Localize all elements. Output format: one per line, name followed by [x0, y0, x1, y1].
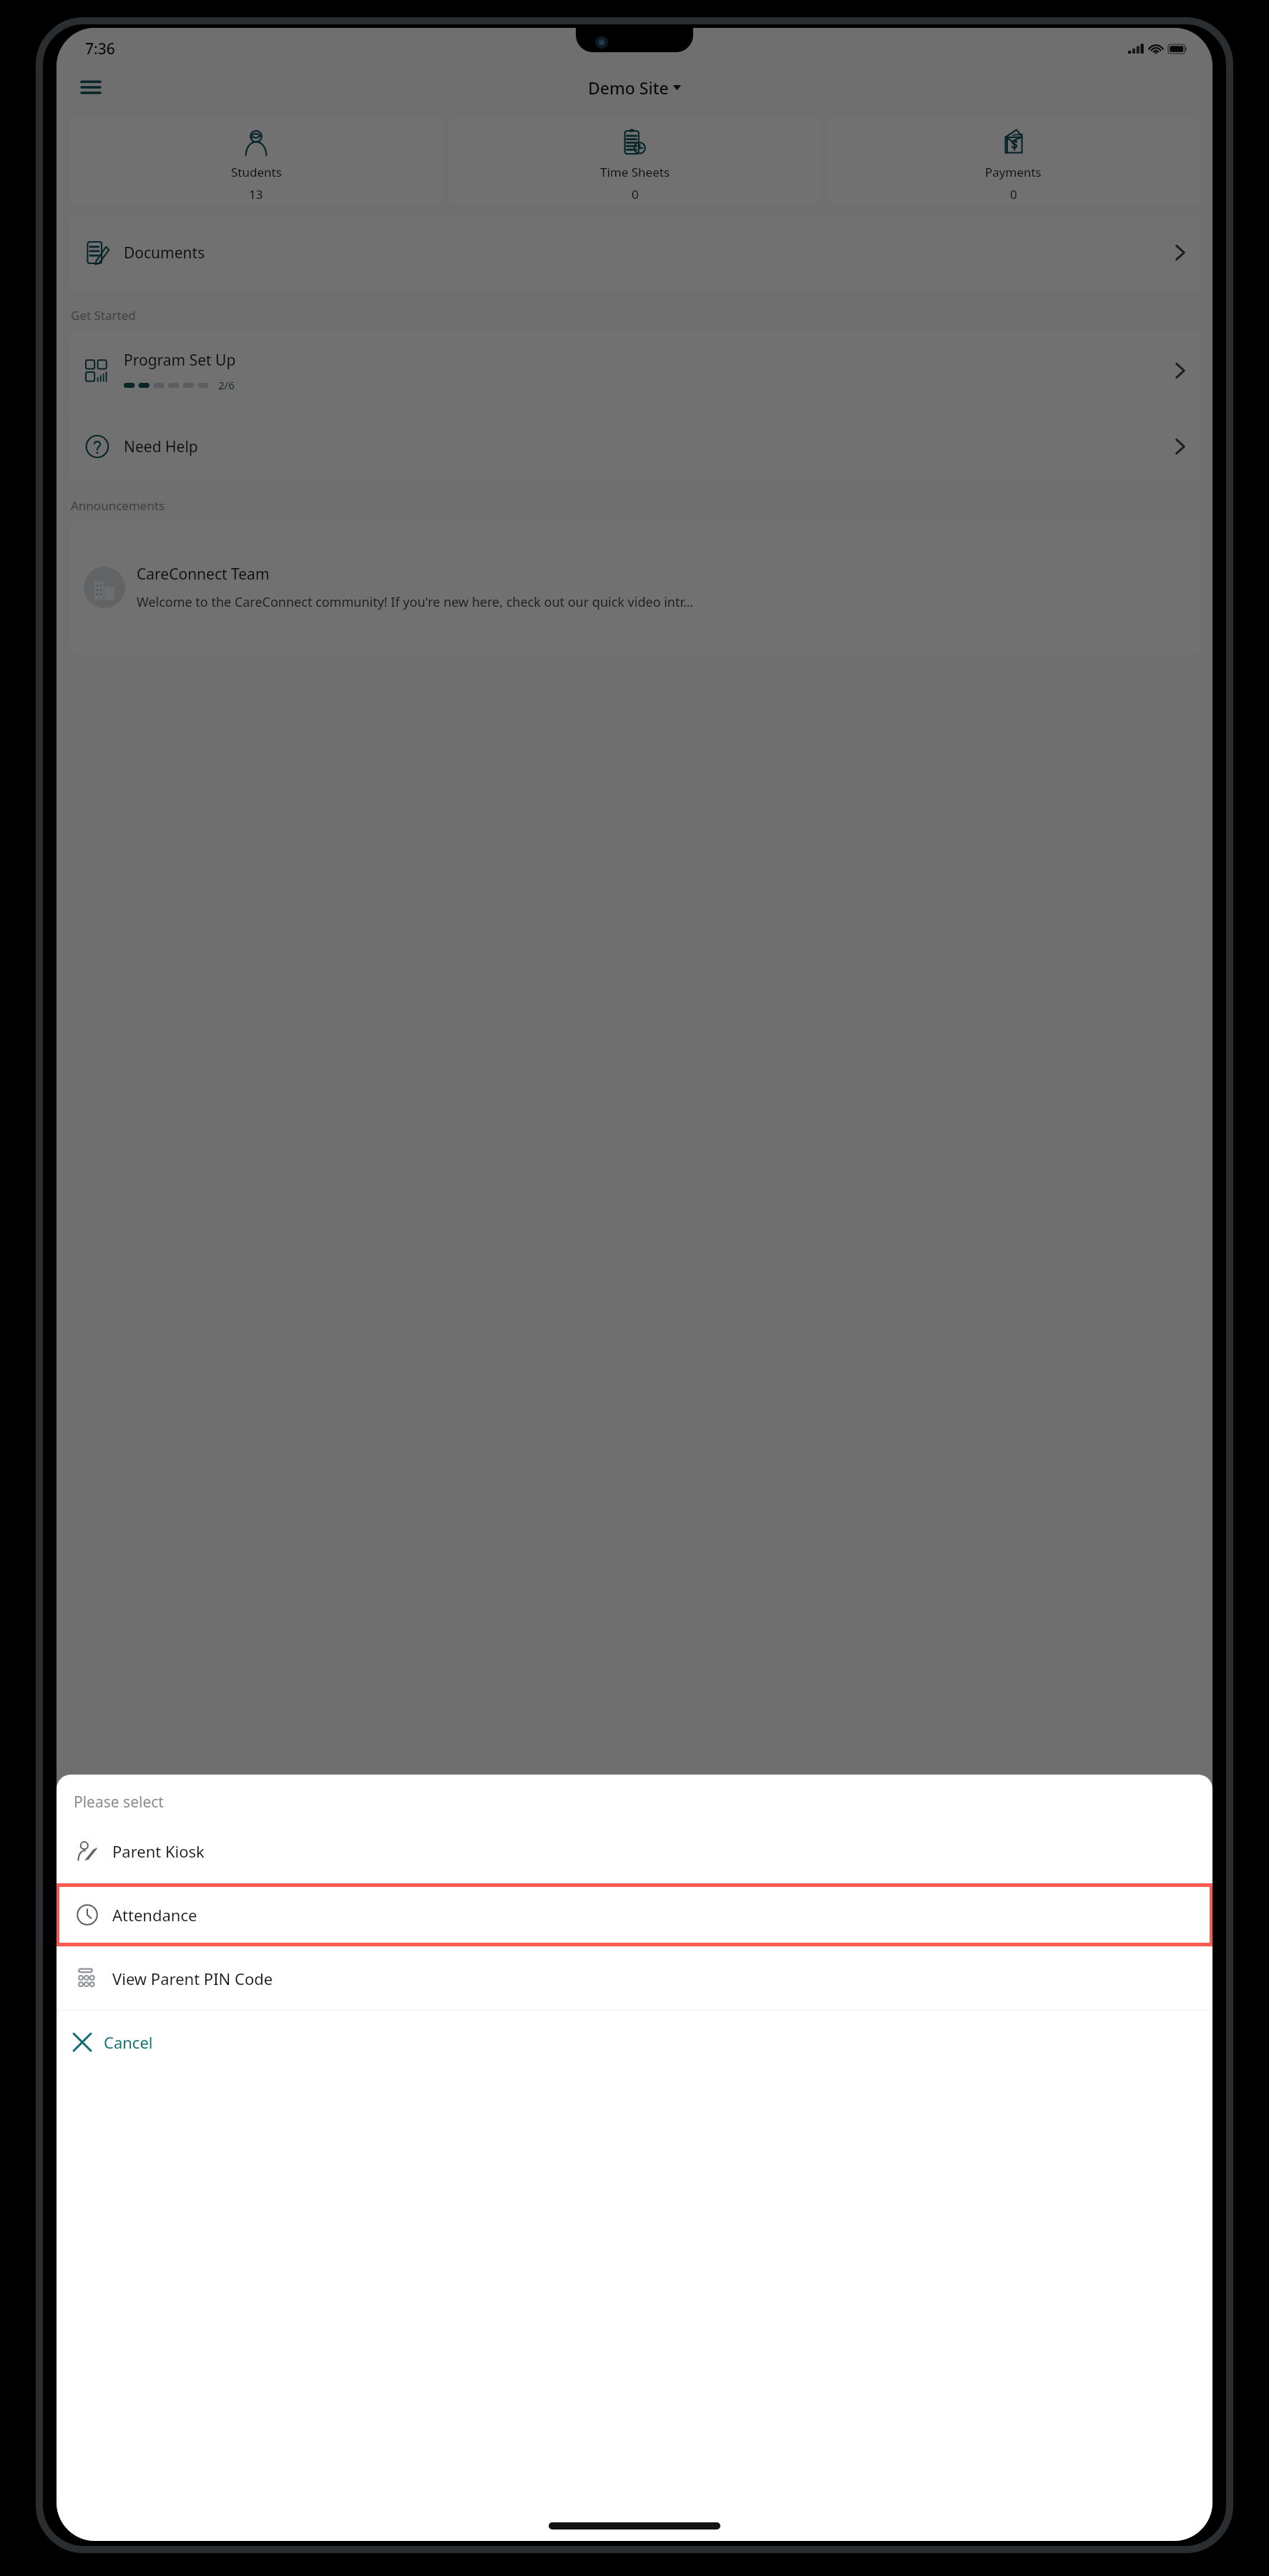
button[interactable]: Open navigation menu: [72, 69, 109, 106]
staticText: 0: [632, 186, 639, 203]
button[interactable]: Time Sheets: [449, 117, 821, 205]
button[interactable]: Attendance: [59, 1887, 1210, 1943]
staticText: Documents: [124, 243, 205, 263]
staticText: 7:36: [85, 39, 115, 59]
staticText: Need Help: [124, 436, 198, 457]
staticText: 2/6: [218, 378, 235, 392]
staticText: Welcome to the CareConnect community! If…: [137, 593, 694, 611]
staticText: CareConnect Team: [137, 564, 270, 585]
staticText: Students: [231, 164, 282, 180]
staticText: Demo Site: [588, 77, 669, 99]
staticText: Please select: [74, 1792, 164, 1813]
button[interactable]: Payments: [827, 117, 1200, 205]
staticText: 0: [1010, 186, 1017, 203]
staticText: Program Set Up: [124, 350, 236, 371]
staticText: Cancel: [104, 2031, 153, 2053]
staticText: 13: [249, 186, 263, 203]
button[interactable]: Documents: [69, 214, 1200, 291]
staticText: Attendance: [112, 1904, 197, 1926]
button[interactable]: Parent Kiosk: [57, 1820, 1212, 1883]
staticText: Time Sheets: [600, 164, 670, 180]
button[interactable]: Students: [69, 117, 443, 205]
button[interactable]: View Parent PIN Code: [57, 1947, 1212, 2010]
button[interactable]: Demo Site: [588, 77, 681, 99]
staticText: Parent Kiosk: [112, 1840, 205, 1862]
button[interactable]: Cancel: [57, 2011, 1212, 2074]
staticText: View Parent PIN Code: [112, 1968, 273, 1989]
staticText: Announcements: [71, 497, 165, 514]
staticText: Payments: [985, 164, 1042, 180]
button[interactable]: Need Help: [69, 411, 1200, 482]
button[interactable]: CareConnect Team: [69, 521, 1200, 654]
staticText: Get Started: [71, 307, 136, 323]
button[interactable]: Program Set Up: [69, 331, 1200, 411]
